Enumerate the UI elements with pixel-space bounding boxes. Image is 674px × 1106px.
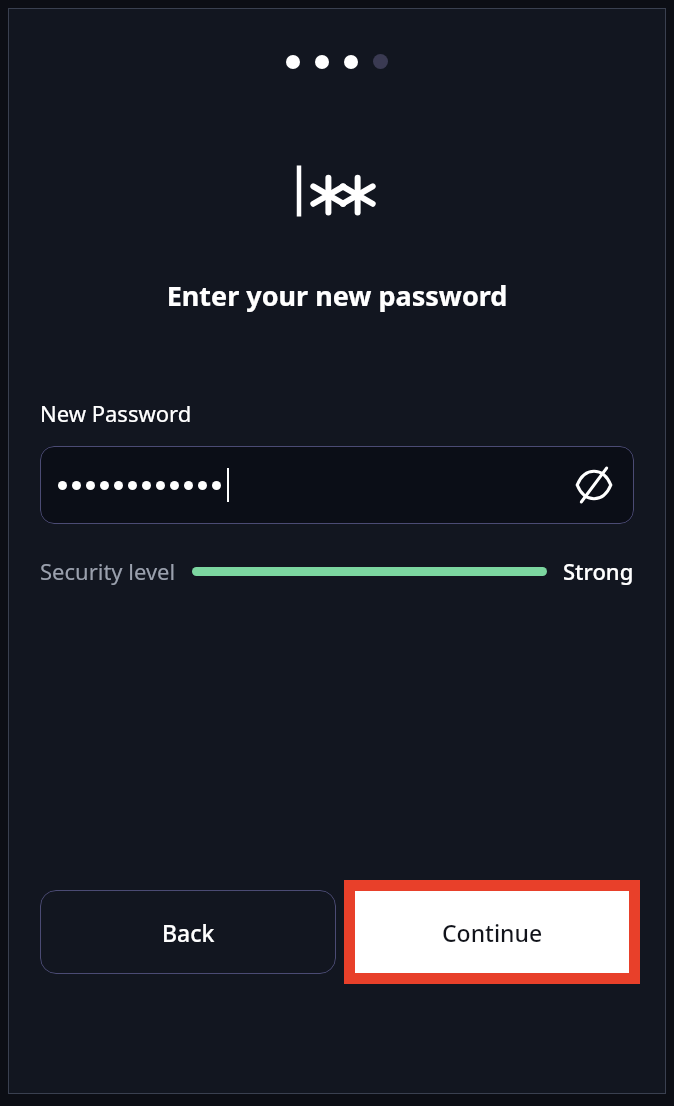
- button[interactable]: Continue: [344, 880, 640, 984]
- staticText: Security level: [40, 556, 176, 586]
- button[interactable]: Show password: [572, 463, 616, 507]
- staticText: Enter your new password: [8, 277, 666, 314]
- staticText: Strong: [563, 556, 634, 586]
- button[interactable]: Show password: [40, 446, 634, 524]
- button[interactable]: Back: [40, 890, 336, 974]
- staticText: Continue: [442, 917, 543, 948]
- staticText: Back: [162, 917, 215, 948]
- staticText: New Password: [40, 398, 192, 428]
